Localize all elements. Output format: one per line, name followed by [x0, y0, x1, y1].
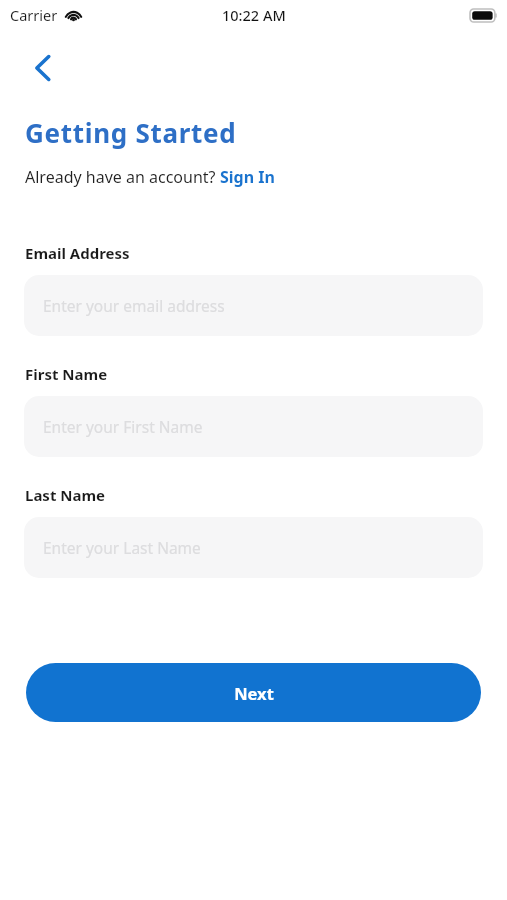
button[interactable]: Back	[20, 45, 66, 91]
staticText: Carrier	[10, 5, 58, 25]
staticText: First Name	[25, 364, 108, 384]
staticText: Enter your email address	[43, 295, 225, 316]
button[interactable]: Next	[26, 663, 481, 722]
staticText: Getting Started	[25, 115, 237, 150]
staticText: Last Name	[25, 485, 106, 505]
staticText: Email Address	[25, 243, 130, 263]
button[interactable]: Enter your Last Name	[24, 517, 483, 578]
button[interactable]: Enter your First Name	[24, 396, 483, 457]
staticText: Enter your First Name	[43, 416, 203, 437]
staticText: Sign In	[220, 166, 275, 188]
staticText: Already have an account?	[25, 166, 220, 188]
staticText: 10:22 AM	[222, 5, 286, 25]
button[interactable]: Sign In	[220, 166, 275, 188]
staticText: Next	[234, 682, 274, 704]
button[interactable]: Enter your email address	[24, 275, 483, 336]
staticText: Enter your Last Name	[43, 537, 201, 558]
